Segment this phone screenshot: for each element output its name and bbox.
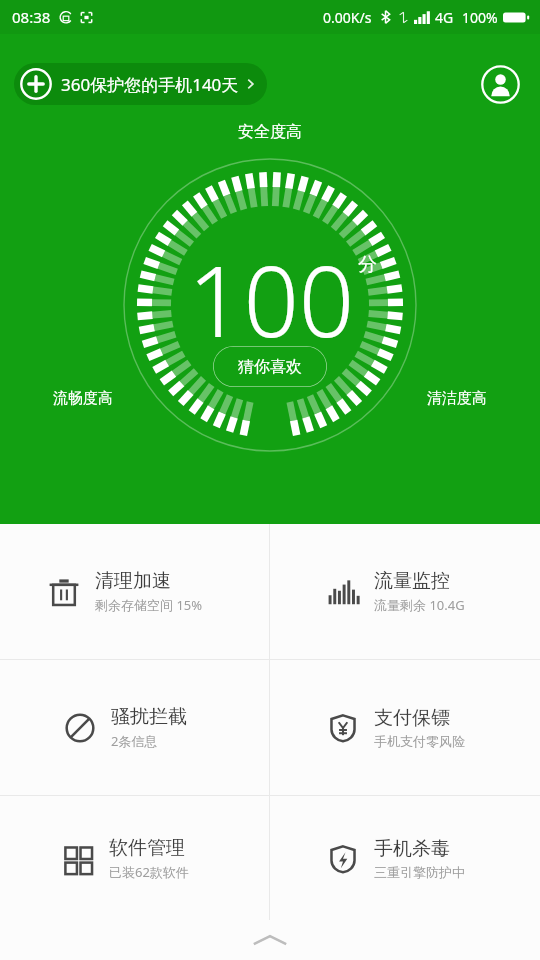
staticText: 360保护您的手机140天 <box>61 73 239 96</box>
staticText: 100% <box>462 8 498 27</box>
button[interactable]: 支付保镖 <box>270 660 540 795</box>
staticText: 0.00K/s <box>323 8 372 27</box>
staticText: 流畅度高 <box>53 389 113 408</box>
staticText: 三重引擎防护中 <box>374 864 465 880</box>
button[interactable]: 清理加速 <box>0 524 269 659</box>
staticText: 剩余存储空间 15% <box>95 596 203 614</box>
staticText: 软件管理 <box>109 836 185 860</box>
staticText: 骚扰拦截 <box>111 705 187 729</box>
staticText: 流量剩余 10.4G <box>374 596 465 614</box>
staticText: 流量监控 <box>374 569 450 593</box>
button[interactable]: 猜你喜欢 <box>213 346 327 387</box>
staticText: 分 <box>358 253 377 277</box>
staticText: 2条信息 <box>111 732 158 750</box>
button[interactable]: 骚扰拦截 <box>0 660 269 795</box>
staticText: 手机杀毒 <box>374 837 450 861</box>
staticText: 支付保镖 <box>374 706 450 730</box>
button[interactable]: 360保护您的手机140天 <box>14 63 267 105</box>
button[interactable]: 流量监控 <box>270 524 540 659</box>
staticText: 手机支付零风险 <box>374 733 465 749</box>
staticText: 清洁度高 <box>427 389 487 408</box>
button[interactable]: 软件管理 <box>0 796 269 920</box>
button[interactable]: Expand <box>0 920 540 960</box>
staticText: 安全度高 <box>238 122 302 142</box>
button[interactable]: Account <box>481 65 520 104</box>
staticText: 已装62款软件 <box>109 863 189 881</box>
staticText: 4G <box>435 8 454 27</box>
staticText: 清理加速 <box>95 569 171 593</box>
staticText: 猜你喜欢 <box>238 357 302 377</box>
staticText: 100 <box>188 233 355 365</box>
button[interactable]: 手机杀毒 <box>270 796 540 920</box>
staticText: 08:38 <box>12 7 51 27</box>
